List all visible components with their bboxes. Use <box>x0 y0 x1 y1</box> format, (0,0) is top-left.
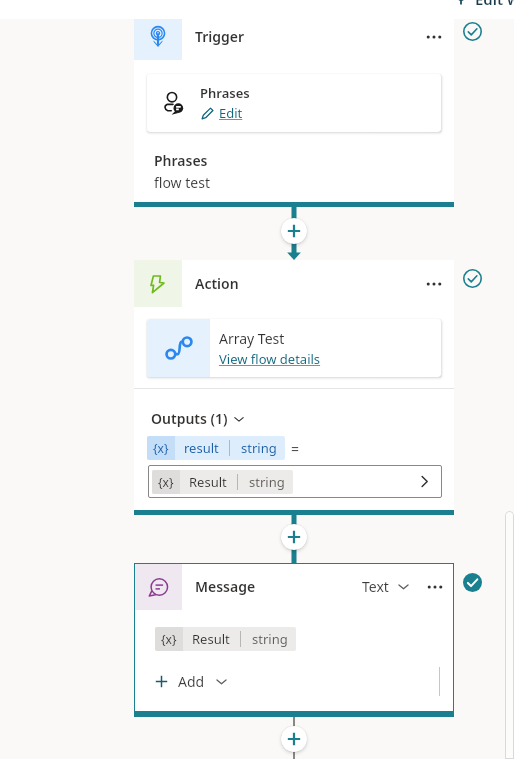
button[interactable]: {x} <box>147 436 285 460</box>
button[interactable]: More options <box>420 270 448 298</box>
button[interactable]: Add step <box>281 218 307 244</box>
button[interactable]: Array Test <box>147 319 441 377</box>
staticText: Result <box>192 630 230 648</box>
button[interactable]: Edit workflow <box>454 0 514 9</box>
button[interactable]: Outputs (1) <box>151 409 245 428</box>
staticText: Phrases <box>200 84 250 102</box>
staticText: {x} <box>153 440 169 456</box>
staticText: Result <box>189 473 227 491</box>
button[interactable]: {x} <box>148 465 442 498</box>
button[interactable]: Add step <box>281 726 307 752</box>
staticText: = <box>291 439 300 458</box>
staticText: Action <box>195 274 239 293</box>
button[interactable]: Trigger <box>134 13 454 60</box>
staticText: Phrases <box>154 151 208 170</box>
button[interactable]: Status: complete <box>462 572 483 593</box>
button[interactable]: More options <box>420 23 448 51</box>
staticText: string <box>241 439 277 457</box>
staticText: string <box>249 473 285 491</box>
button[interactable]: Text <box>362 577 410 596</box>
staticText: result <box>184 439 219 457</box>
button[interactable]: Phrases <box>147 74 441 132</box>
button[interactable]: Message <box>134 563 454 610</box>
button[interactable]: Edit <box>200 104 243 122</box>
button[interactable]: {x} <box>152 470 293 494</box>
staticText: flow test <box>154 173 210 192</box>
staticText: Text <box>362 577 389 596</box>
staticText: View flow details <box>219 350 321 368</box>
staticText: Outputs (1) <box>151 409 228 428</box>
staticText: string <box>252 630 288 648</box>
button[interactable]: {x} <box>155 627 296 651</box>
button[interactable]: Add <box>155 672 228 691</box>
button[interactable]: Status: complete <box>462 268 483 289</box>
staticText: {x} <box>158 474 174 490</box>
staticText: {x} <box>161 631 177 647</box>
staticText: Trigger <box>195 27 245 46</box>
button[interactable]: Status: complete <box>462 21 483 42</box>
button[interactable]: More options <box>421 573 449 601</box>
staticText: Message <box>195 577 256 596</box>
staticText: Edit wo <box>475 0 514 9</box>
staticText: Edit <box>219 104 243 122</box>
button[interactable]: Add step <box>281 524 307 550</box>
button[interactable]: Action <box>134 260 454 307</box>
staticText: Array Test <box>219 329 285 348</box>
staticText: Add <box>178 672 205 691</box>
